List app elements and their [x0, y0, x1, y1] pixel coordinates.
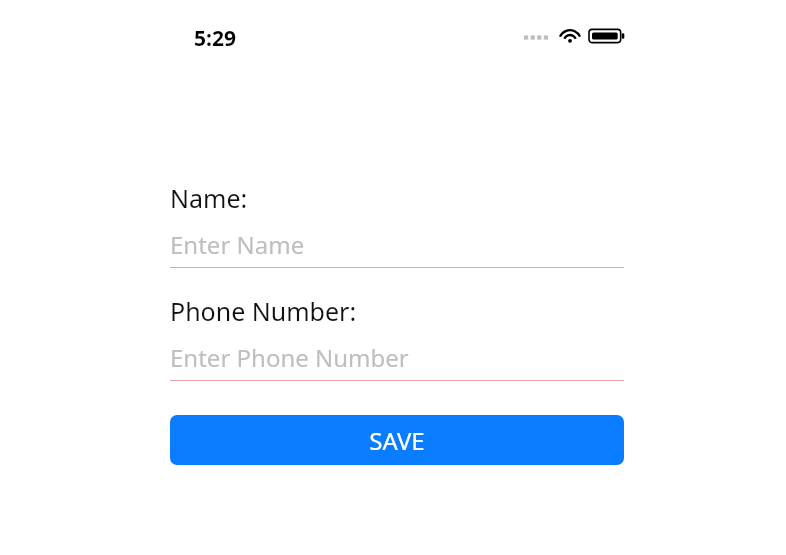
- staticText: Enter Name: [170, 228, 305, 261]
- other: Cellular signal: [524, 24, 551, 48]
- other: Battery full: [589, 24, 625, 48]
- button[interactable]: Enter Name: [170, 228, 624, 268]
- staticText: Name:: [170, 181, 248, 215]
- staticText: Enter Phone Number: [170, 341, 409, 374]
- staticText: SAVE: [369, 424, 425, 457]
- staticText: Phone Number:: [170, 294, 357, 328]
- other: Wi-Fi: [558, 24, 582, 48]
- staticText: 5:29: [194, 24, 236, 53]
- button[interactable]: Enter Phone Number: [170, 341, 624, 381]
- button[interactable]: SAVE: [170, 415, 624, 465]
